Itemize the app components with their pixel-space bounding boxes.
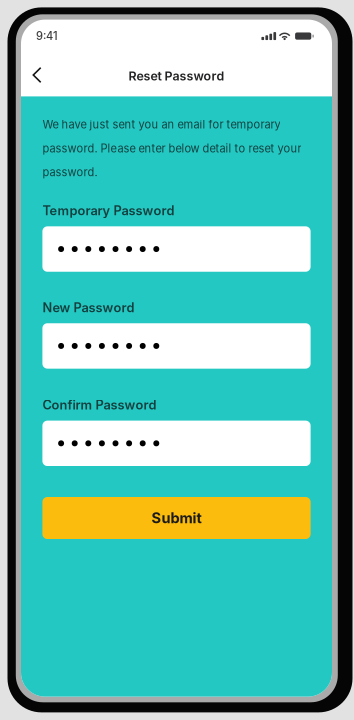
staticText: Temporary Password (42, 203, 174, 218)
staticText: Confirm Password (42, 397, 156, 413)
staticText: Reset Password (128, 68, 224, 83)
staticText: New Password (42, 300, 134, 315)
staticText: 9:41 (36, 29, 58, 43)
button[interactable]: Back (21, 60, 53, 92)
staticText: We have just sent you an email for tempo… (42, 118, 301, 179)
staticText: Submit (151, 509, 201, 527)
button[interactable]: Submit (42, 497, 311, 539)
